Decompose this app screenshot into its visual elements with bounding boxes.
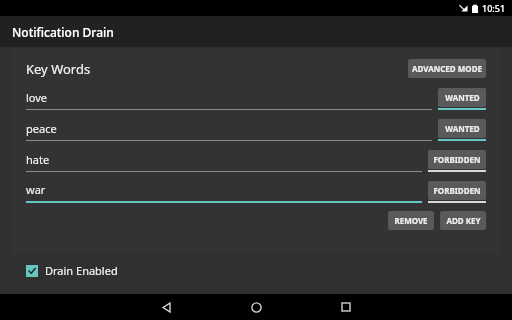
button[interactable]: WANTED bbox=[438, 88, 486, 110]
staticText: Notification Drain bbox=[12, 24, 114, 40]
staticText: peace bbox=[26, 121, 57, 136]
button[interactable]: love bbox=[26, 90, 432, 110]
button[interactable]: war bbox=[26, 182, 422, 203]
staticText: ADVANCED MODE bbox=[412, 63, 482, 74]
staticText: WANTED bbox=[445, 92, 480, 103]
staticText: love bbox=[26, 90, 48, 105]
staticText: Drain Enabled bbox=[45, 263, 118, 278]
staticText: FORBIDDEN bbox=[433, 185, 481, 196]
button[interactable]: Back bbox=[121, 294, 211, 320]
button[interactable]: Recent apps bbox=[301, 294, 391, 320]
button[interactable]: WANTED bbox=[438, 119, 486, 141]
button[interactable]: Drain Enabled bbox=[26, 263, 118, 278]
staticText: REMOVE bbox=[394, 215, 428, 226]
button[interactable]: FORBIDDEN bbox=[428, 150, 486, 172]
staticText: war bbox=[26, 182, 46, 197]
button[interactable]: ADD KEY bbox=[440, 211, 486, 230]
button[interactable]: Home bbox=[211, 294, 301, 320]
staticText: FORBIDDEN bbox=[433, 154, 481, 165]
button[interactable]: REMOVE bbox=[388, 211, 434, 230]
staticText: Key Words bbox=[26, 60, 91, 78]
staticText: hate bbox=[26, 152, 50, 167]
button[interactable]: hate bbox=[26, 152, 422, 172]
button[interactable]: peace bbox=[26, 121, 432, 141]
staticText: ADD KEY bbox=[446, 215, 481, 226]
staticText: WANTED bbox=[445, 123, 480, 134]
button[interactable]: FORBIDDEN bbox=[428, 181, 486, 203]
button[interactable]: ADVANCED MODE bbox=[408, 59, 486, 78]
staticText: 10:51 bbox=[482, 2, 506, 14]
